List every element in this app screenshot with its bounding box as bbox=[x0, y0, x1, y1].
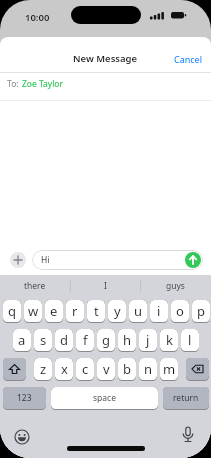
button[interactable]: l bbox=[181, 329, 199, 352]
staticText: o bbox=[176, 302, 184, 320]
button[interactable]: o bbox=[171, 300, 189, 323]
staticText: New Message bbox=[73, 52, 138, 65]
button[interactable]: d bbox=[55, 329, 73, 352]
button[interactable]: w bbox=[24, 300, 42, 323]
staticText: x bbox=[61, 360, 68, 378]
staticText: e bbox=[50, 302, 58, 320]
staticText: f bbox=[83, 331, 88, 349]
button[interactable]: y bbox=[108, 300, 126, 323]
button[interactable]: guys bbox=[140, 277, 210, 295]
button[interactable]: there bbox=[0, 277, 70, 295]
staticText: Cancel bbox=[174, 53, 203, 65]
staticText: a bbox=[18, 331, 26, 349]
staticText: q bbox=[8, 302, 16, 320]
staticText: v bbox=[103, 360, 110, 378]
button[interactable]: q bbox=[3, 300, 21, 323]
button[interactable]: Hi bbox=[32, 250, 203, 270]
button[interactable]: h bbox=[118, 329, 136, 352]
button[interactable]: p bbox=[192, 300, 210, 323]
staticText: c bbox=[82, 360, 89, 378]
staticText: guys bbox=[166, 280, 185, 292]
button[interactable]: e bbox=[45, 300, 63, 323]
staticText: i bbox=[157, 302, 161, 320]
button[interactable]: f bbox=[76, 329, 94, 352]
button[interactable]: Cancel bbox=[174, 53, 203, 65]
staticText: s bbox=[40, 331, 47, 349]
staticText: space bbox=[93, 392, 116, 404]
button[interactable]: k bbox=[160, 329, 178, 352]
button[interactable] bbox=[13, 428, 31, 446]
staticText: 10:00 bbox=[25, 11, 50, 24]
button[interactable] bbox=[10, 252, 26, 268]
staticText: g bbox=[102, 331, 110, 349]
button[interactable]: g bbox=[97, 329, 115, 352]
staticText: To: bbox=[7, 78, 19, 90]
staticText: h bbox=[123, 331, 132, 349]
staticText: l bbox=[188, 331, 192, 349]
staticText: d bbox=[60, 331, 68, 349]
staticText: 123 bbox=[17, 392, 32, 404]
button[interactable]: space bbox=[51, 387, 158, 410]
staticText: k bbox=[166, 331, 173, 349]
staticText: there bbox=[24, 280, 46, 292]
staticText: n bbox=[144, 360, 153, 378]
button[interactable]: s bbox=[34, 329, 52, 352]
staticText: t bbox=[94, 302, 99, 320]
button[interactable]: m bbox=[160, 358, 178, 381]
button[interactable]: x bbox=[55, 358, 73, 381]
button[interactable]: a bbox=[13, 329, 31, 352]
staticText: j bbox=[146, 331, 150, 349]
button[interactable]: j bbox=[139, 329, 157, 352]
staticText: Hi bbox=[41, 254, 50, 266]
staticText: I bbox=[104, 280, 107, 292]
staticText: w bbox=[28, 302, 39, 320]
button[interactable]: To: bbox=[7, 78, 64, 90]
staticText: return bbox=[173, 392, 199, 404]
button[interactable]: t bbox=[87, 300, 105, 323]
button[interactable] bbox=[185, 252, 201, 268]
button[interactable]: return bbox=[163, 387, 209, 410]
button[interactable]: r bbox=[66, 300, 84, 323]
staticText: z bbox=[40, 360, 47, 378]
staticText: y bbox=[114, 302, 121, 320]
button[interactable] bbox=[179, 425, 197, 443]
button[interactable]: u bbox=[129, 300, 147, 323]
button[interactable]: v bbox=[97, 358, 115, 381]
button[interactable] bbox=[3, 358, 26, 381]
button[interactable]: c bbox=[76, 358, 94, 381]
button[interactable]: 123 bbox=[3, 387, 46, 410]
button[interactable]: i bbox=[150, 300, 168, 323]
staticText: p bbox=[197, 302, 205, 320]
button[interactable]: n bbox=[139, 358, 157, 381]
button[interactable] bbox=[186, 358, 209, 381]
staticText: r bbox=[72, 302, 78, 320]
button[interactable]: b bbox=[118, 358, 136, 381]
button[interactable]: I bbox=[70, 277, 140, 295]
staticText: u bbox=[134, 302, 143, 320]
staticText: Zoe Taylor bbox=[22, 78, 64, 90]
staticText: b bbox=[123, 360, 131, 378]
button[interactable]: z bbox=[34, 358, 52, 381]
staticText: m bbox=[163, 360, 176, 378]
